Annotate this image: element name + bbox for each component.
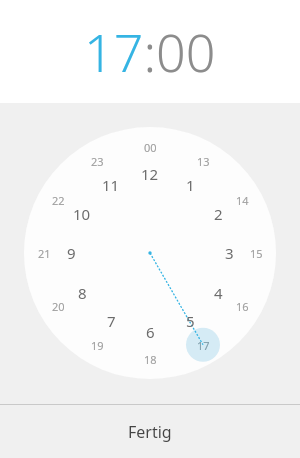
button[interactable]: Hour 8 xyxy=(62,281,102,305)
staticText: 5 xyxy=(186,311,195,331)
button[interactable]: Hour 19 xyxy=(77,333,117,357)
staticText: 3 xyxy=(225,243,234,263)
button[interactable]: Hour 9 xyxy=(51,241,91,265)
button[interactable]: Hour 7 xyxy=(91,309,131,333)
button[interactable]: Hour 20 xyxy=(38,294,78,318)
staticText: 8 xyxy=(78,283,87,303)
staticText: 17 xyxy=(197,338,210,353)
staticText: 11 xyxy=(102,175,120,195)
button[interactable]: Hour 4 xyxy=(198,281,238,305)
staticText: 13 xyxy=(197,154,210,169)
button[interactable]: Hour 15 xyxy=(236,241,276,265)
button[interactable]: Hour 14 xyxy=(222,188,262,212)
staticText: 2 xyxy=(214,204,223,224)
staticText: Fertig xyxy=(128,421,172,443)
button[interactable]: Hour 18 xyxy=(130,347,170,371)
staticText: 12 xyxy=(141,164,159,184)
staticText: 22 xyxy=(52,193,65,208)
staticText: 16 xyxy=(236,299,249,314)
staticText: 1 xyxy=(186,175,195,195)
button[interactable]: Hour 5 xyxy=(170,309,210,333)
button[interactable]: Hour 23 xyxy=(77,149,117,173)
button[interactable]: Hour 16 xyxy=(222,294,262,318)
staticText: 14 xyxy=(236,193,249,208)
button[interactable]: Hour 3 xyxy=(209,241,249,265)
button[interactable]: Hour 21 xyxy=(24,241,64,265)
staticText: 18 xyxy=(144,352,157,367)
button[interactable]: Hour 13 xyxy=(183,149,223,173)
button[interactable]: Fertig xyxy=(0,405,300,458)
staticText: 19 xyxy=(91,338,104,353)
staticText: 9 xyxy=(67,243,76,263)
button[interactable]: Hour 00 xyxy=(130,135,170,159)
button[interactable]: Hour 1 xyxy=(170,173,210,197)
button[interactable]: Hour 22 xyxy=(38,188,78,212)
button[interactable]: Hour 12 xyxy=(130,162,170,186)
staticText: 00 xyxy=(144,140,157,155)
staticText: 4 xyxy=(214,283,223,303)
button[interactable]: Hour 11 xyxy=(91,173,131,197)
staticText: 20 xyxy=(52,299,65,314)
button[interactable]: Hour 2 xyxy=(198,202,238,226)
staticText: 7 xyxy=(107,311,116,331)
staticText: 15 xyxy=(250,246,263,261)
staticText: 21 xyxy=(38,246,51,261)
button[interactable]: Hour 17 xyxy=(183,333,223,357)
staticText: 6 xyxy=(146,322,155,342)
staticText: 23 xyxy=(91,154,104,169)
button[interactable]: Hour 10 xyxy=(62,202,102,226)
button[interactable]: 17:00 xyxy=(0,0,300,103)
staticText: 17:00 xyxy=(84,16,216,87)
button[interactable]: Hour 6 xyxy=(130,320,170,344)
staticText: 10 xyxy=(73,204,91,224)
